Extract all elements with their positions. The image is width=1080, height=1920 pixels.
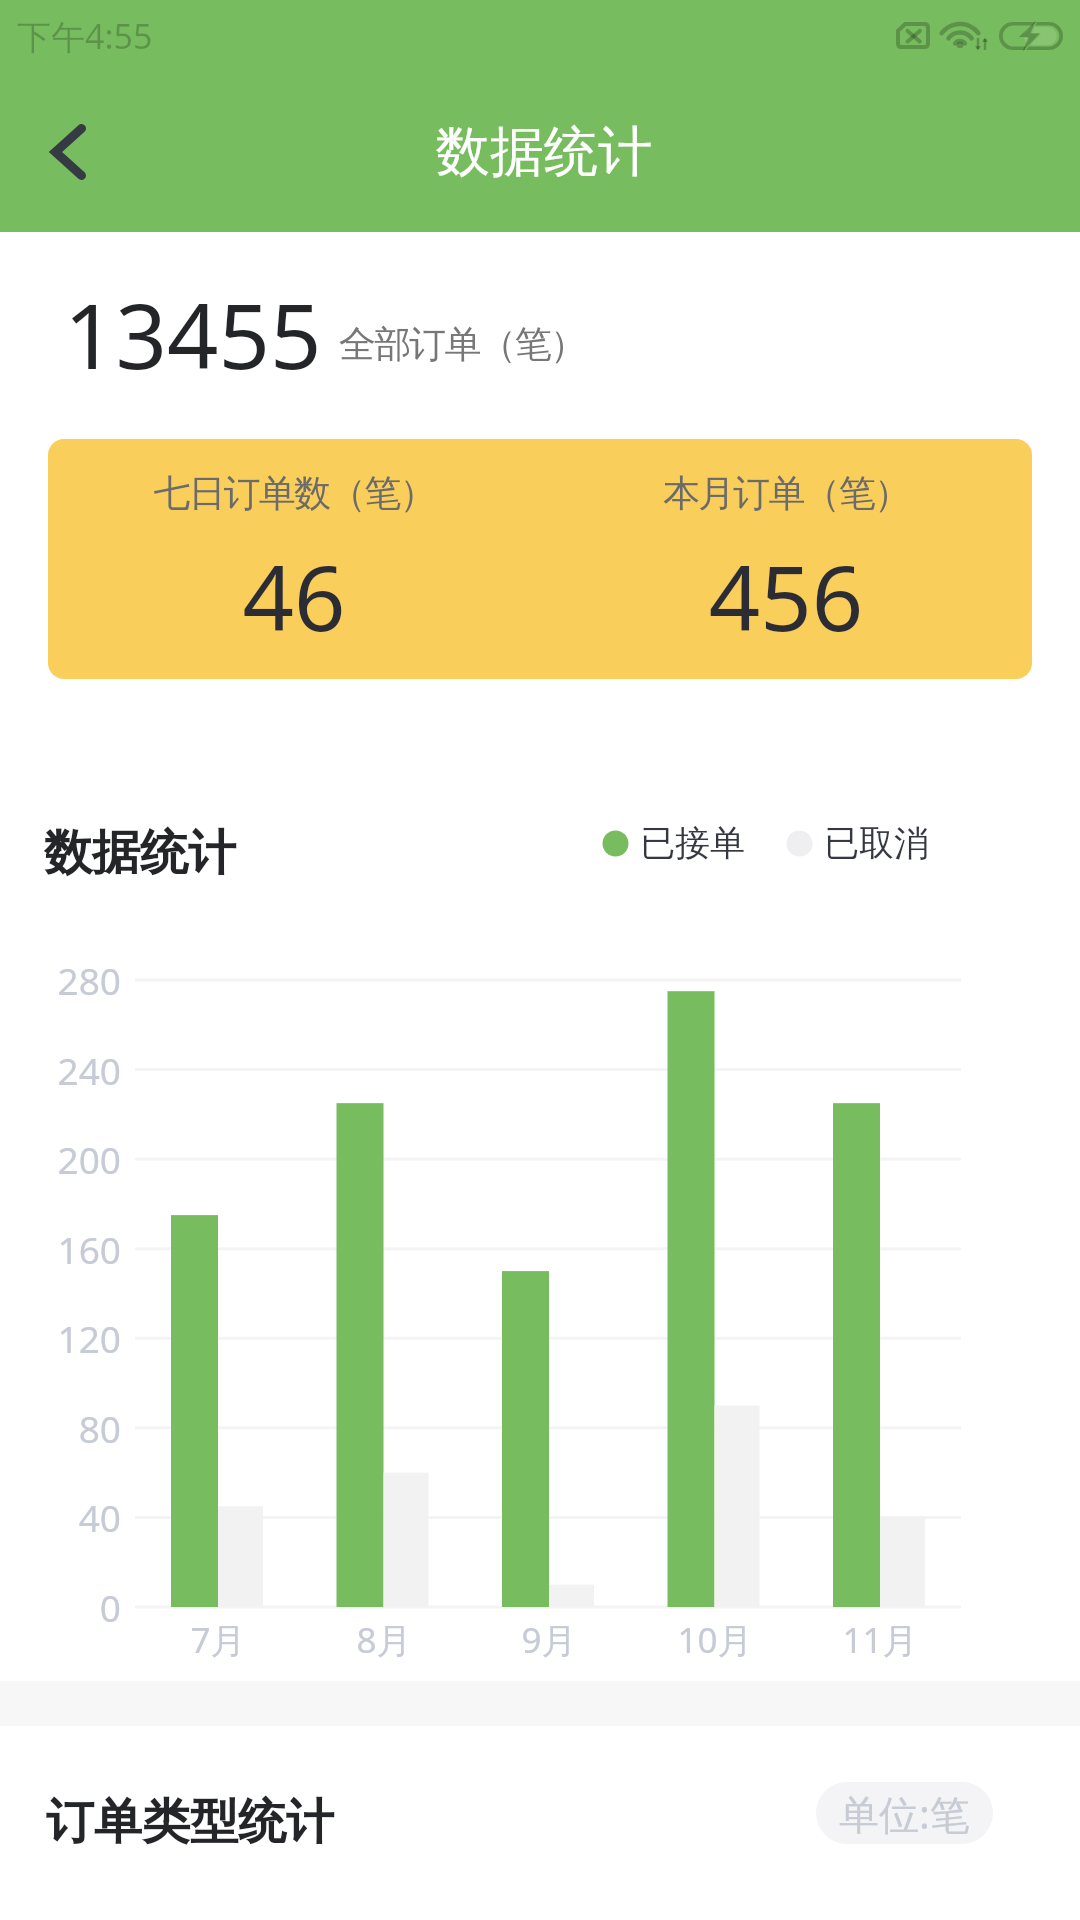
staticText: 下午4:55 xyxy=(17,13,153,59)
button[interactable]: 已接单 xyxy=(602,816,745,870)
staticText: 数据统计 xyxy=(44,823,236,883)
staticText: 单位:笔 xyxy=(839,1786,970,1841)
staticText: 80 xyxy=(0,1403,121,1453)
staticText: 本月订单（笔） xyxy=(540,470,1032,517)
other: Battery charging xyxy=(999,22,1063,50)
other: Wi-Fi xyxy=(942,20,988,50)
staticText: 已接单 xyxy=(640,821,745,865)
staticText: 280 xyxy=(0,955,121,1005)
staticText: 160 xyxy=(0,1224,121,1274)
staticText: 订单类型统计 xyxy=(46,1792,334,1852)
staticText: 120 xyxy=(0,1313,121,1363)
staticText: 13455 xyxy=(64,273,322,396)
staticText: 数据统计 xyxy=(436,118,652,186)
staticText: 240 xyxy=(0,1045,121,1095)
button[interactable]: 单位:笔 xyxy=(816,1782,993,1844)
staticText: 11月 xyxy=(810,1616,950,1664)
staticText: 0 xyxy=(0,1582,121,1632)
button[interactable]: 已取消 xyxy=(786,816,929,870)
staticText: 七日订单数（笔） xyxy=(48,470,540,517)
staticText: 200 xyxy=(0,1134,121,1184)
other: No SIM card xyxy=(896,22,930,49)
staticText: 456 xyxy=(540,535,1032,658)
staticText: 10月 xyxy=(645,1616,785,1664)
staticText: 9月 xyxy=(479,1616,619,1664)
staticText: 全部订单（笔） xyxy=(339,321,586,368)
staticText: 7月 xyxy=(148,1616,288,1664)
button[interactable]: Back xyxy=(12,96,124,208)
staticText: 46 xyxy=(48,535,540,658)
staticText: 已取消 xyxy=(824,821,929,865)
staticText: 8月 xyxy=(314,1616,454,1664)
staticText: 40 xyxy=(0,1492,121,1542)
button[interactable]: 七日订单数（笔） xyxy=(48,439,1032,679)
